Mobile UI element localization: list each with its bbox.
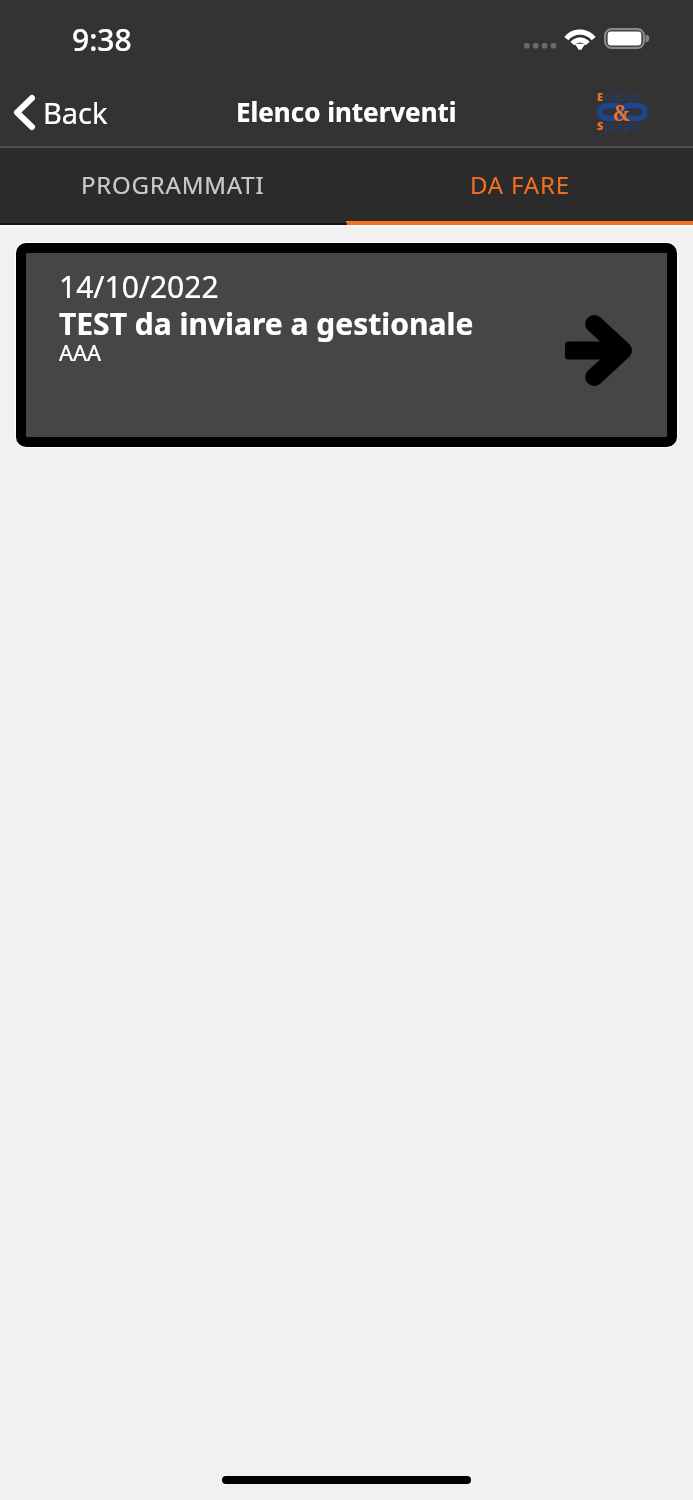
staticText: purghi <box>604 118 639 133</box>
staticText: E <box>597 89 604 104</box>
staticText: TEST da inviare a gestionale <box>59 303 474 344</box>
staticText: PROGRAMMATI <box>81 168 265 201</box>
button[interactable]: DA FARE <box>346 148 693 225</box>
button[interactable]: 14/10/2022 <box>15 242 678 448</box>
staticText: 9:38 <box>72 19 132 60</box>
staticText: Elenco interventi <box>236 94 457 129</box>
staticText: 14/10/2022 <box>59 266 219 307</box>
button[interactable]: Apri intervento <box>557 307 640 394</box>
button[interactable]: PROGRAMMATI <box>0 148 346 225</box>
staticText: cologic <box>604 89 641 104</box>
staticText: AAA <box>59 337 102 367</box>
staticText: & <box>613 99 630 128</box>
staticText: Back <box>43 93 108 132</box>
staticText: S <box>597 118 604 133</box>
button[interactable]: Ecologic C&D Spurghi <box>597 93 648 132</box>
button[interactable]: Back <box>0 85 122 140</box>
staticText: DA FARE <box>470 168 570 201</box>
